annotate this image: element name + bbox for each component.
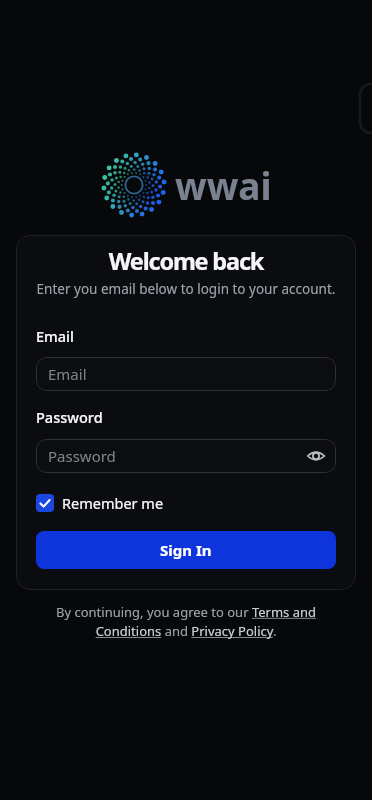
button[interactable] [306,446,326,466]
button[interactable]: Password [36,439,336,473]
staticText: Sign In [160,540,212,560]
staticText: By continuing, you agree to our Terms an… [46,603,326,640]
button[interactable]: By continuing, you agree to our Terms an… [46,603,326,640]
staticText: Enter you email below to login to your a… [36,280,336,298]
button[interactable]: Remember me [36,493,164,513]
button[interactable]: Sign In [36,531,336,569]
staticText: Remember me [62,493,164,513]
staticText: Password [36,407,103,427]
staticText: Password [48,446,306,466]
staticText: Email [36,326,74,346]
button[interactable]: Email [36,357,336,391]
staticText: Email [48,364,87,384]
staticText: wwai [175,160,272,210]
staticText: Welcome back [36,245,336,277]
